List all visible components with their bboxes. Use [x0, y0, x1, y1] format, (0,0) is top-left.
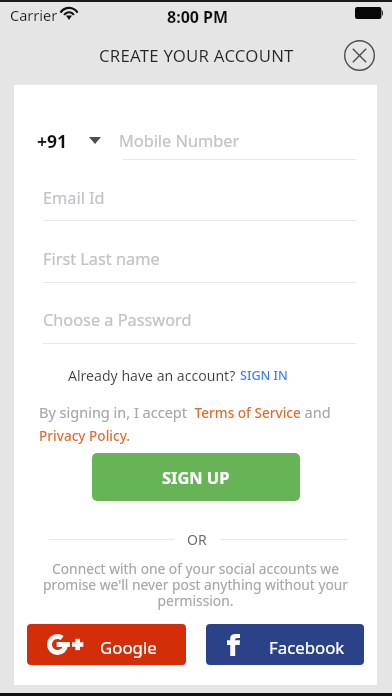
staticText: OR	[187, 530, 207, 549]
staticText: Choose a Password	[43, 309, 192, 331]
staticText: Google	[100, 636, 157, 659]
staticText: Mobile Number	[119, 130, 240, 152]
staticText: SIGN UP	[162, 466, 230, 488]
button[interactable]: SIGN UP	[92, 453, 300, 501]
staticText: 8:00 PM	[167, 6, 229, 28]
staticText: Facebook	[269, 636, 345, 659]
staticText: By signing in, I accept Terms of Service…	[39, 402, 369, 445]
staticText: Email Id	[43, 187, 105, 209]
staticText: Carrier	[10, 5, 58, 25]
staticText: +91	[37, 129, 68, 153]
staticText: Already have an account?	[68, 366, 236, 385]
button[interactable]: Close	[344, 40, 375, 71]
button[interactable]: Google	[27, 624, 186, 665]
staticText: Connect with one of your social accounts…	[39, 559, 352, 610]
button[interactable]: Facebook	[206, 624, 364, 665]
staticText: First Last name	[43, 248, 160, 270]
staticText: CREATE YOUR ACCOUNT	[99, 44, 294, 67]
staticText: SIGN IN	[240, 367, 288, 384]
button[interactable]: Already have an account?	[68, 366, 288, 385]
